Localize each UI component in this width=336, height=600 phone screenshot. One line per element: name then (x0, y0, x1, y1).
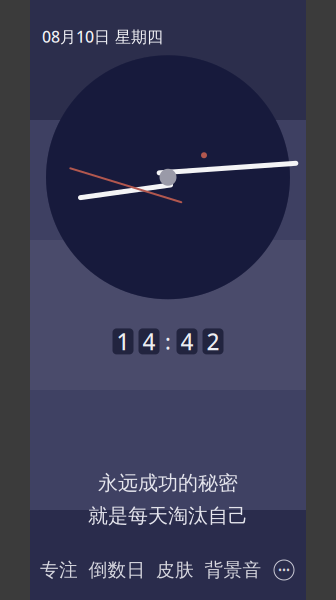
staticText: ••• (278, 563, 290, 577)
staticText: 倒数日 (88, 558, 145, 581)
staticText: 专注 (40, 558, 78, 581)
staticText: 4 (180, 326, 193, 356)
staticText: 永远成功的秘密 (98, 471, 238, 495)
staticText: 背景音 (204, 558, 261, 581)
button[interactable]: 背景音 (204, 548, 262, 592)
button[interactable]: 更多 (262, 548, 306, 592)
staticText: 4 (142, 326, 155, 356)
staticText: 1 (116, 326, 129, 356)
button[interactable]: 皮肤 (146, 548, 204, 592)
button[interactable]: 倒数日 (88, 548, 146, 592)
staticText: 08月10日 星期四 (42, 26, 163, 47)
staticText: : (165, 327, 171, 355)
button[interactable]: 专注 (30, 548, 88, 592)
staticText: 就是每天淘汰自己 (88, 503, 248, 528)
staticText: 2 (206, 326, 219, 356)
staticText: 皮肤 (156, 558, 194, 581)
